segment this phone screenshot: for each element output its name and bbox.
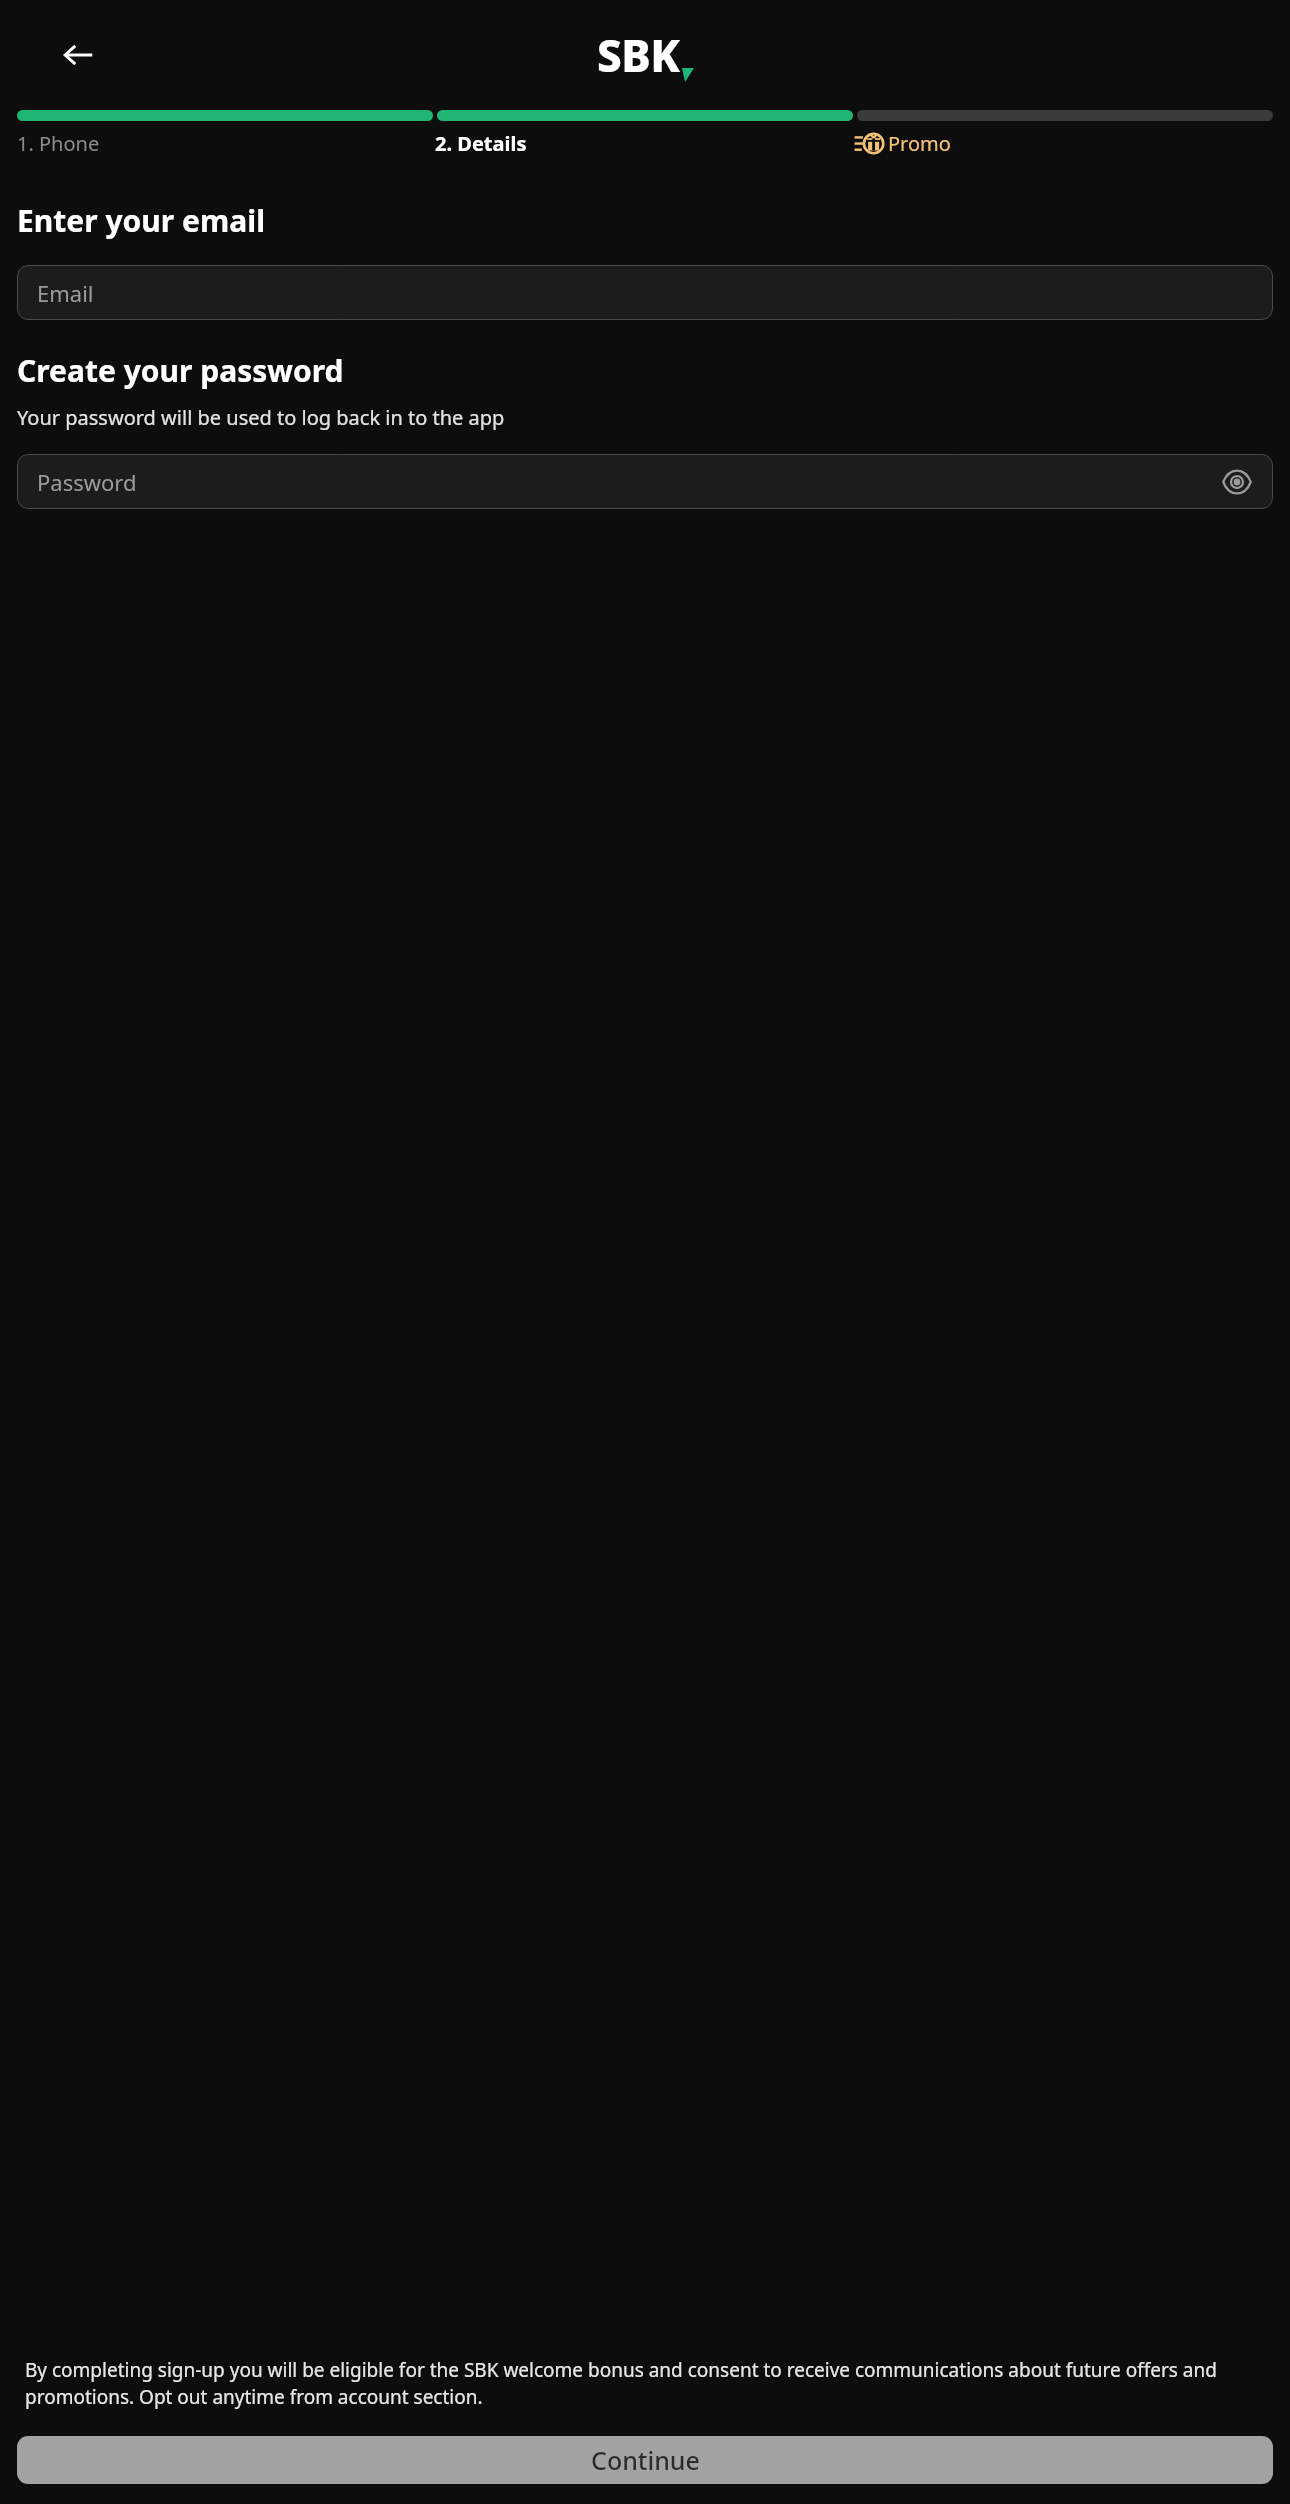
staticText: Password bbox=[37, 467, 137, 497]
staticText: SBK bbox=[597, 25, 680, 85]
staticText: Promo bbox=[888, 130, 951, 157]
button[interactable] bbox=[857, 110, 1273, 121]
button[interactable]: Back bbox=[48, 25, 108, 85]
button[interactable]: Show password bbox=[1215, 460, 1259, 504]
button[interactable] bbox=[437, 110, 853, 121]
staticText: 2. Details bbox=[435, 130, 527, 157]
staticText: By completing sign-up you will be eligib… bbox=[25, 2357, 1265, 2410]
staticText: Your password will be used to log back i… bbox=[17, 404, 505, 431]
button[interactable]: Email bbox=[17, 265, 1273, 320]
staticText: Create your password bbox=[17, 350, 344, 391]
staticText: 1. Phone bbox=[17, 130, 100, 157]
button[interactable]: Password bbox=[17, 454, 1273, 509]
button[interactable]: Continue bbox=[17, 2436, 1273, 2484]
button[interactable] bbox=[17, 110, 433, 121]
staticText: Continue bbox=[591, 2443, 700, 2477]
staticText: Enter your email bbox=[17, 200, 266, 241]
staticText: Email bbox=[37, 278, 94, 308]
